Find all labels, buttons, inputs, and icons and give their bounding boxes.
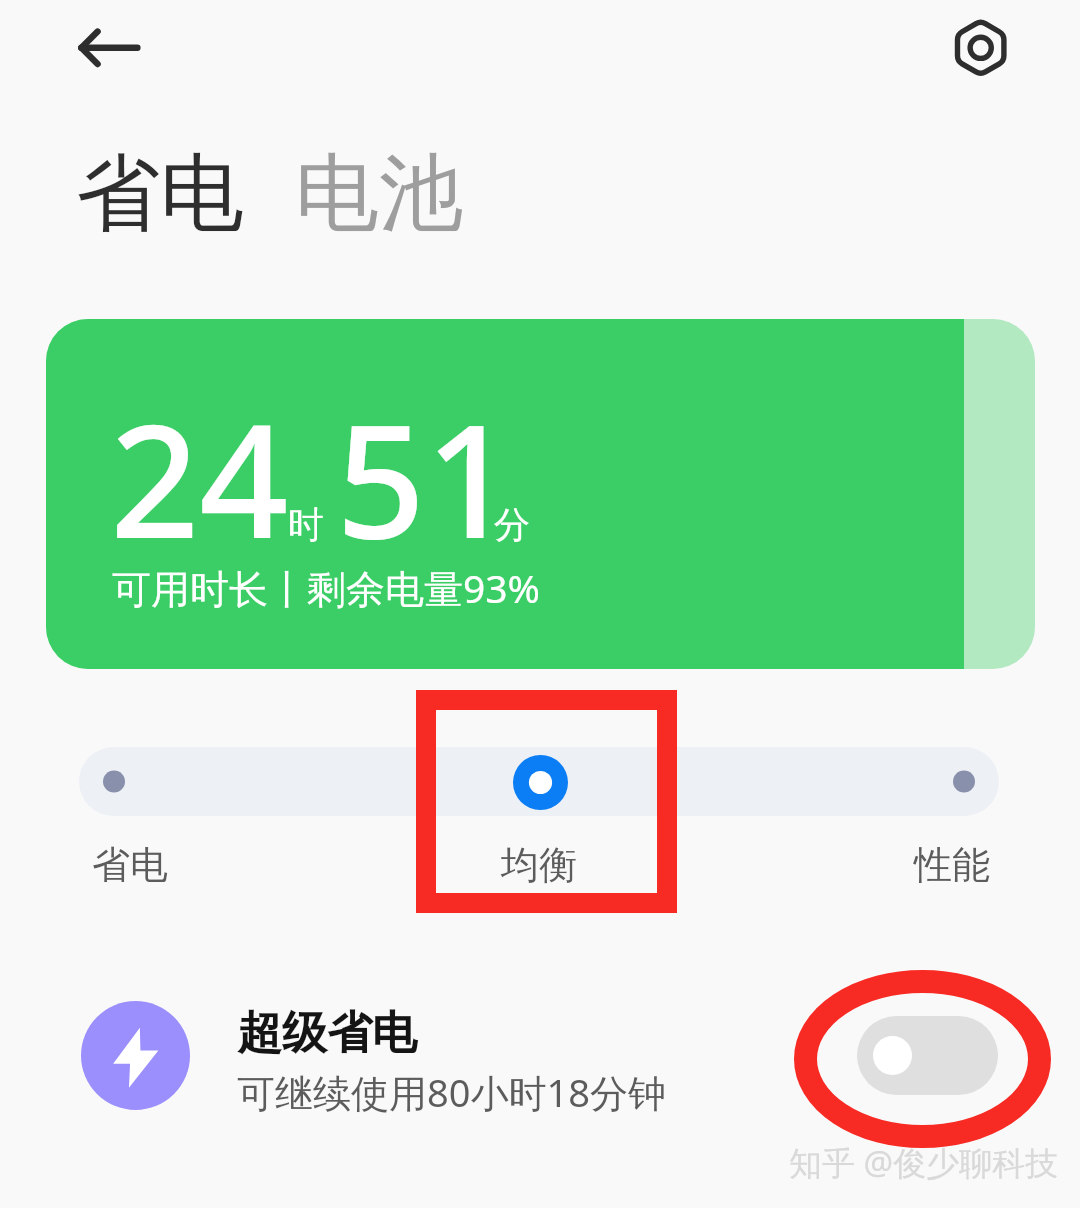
button[interactable]: Settings	[940, 8, 1020, 88]
staticText: 分	[494, 502, 530, 547]
button[interactable]: 超级省电	[0, 975, 1080, 1140]
button[interactable]: 24	[46, 319, 1035, 669]
staticText: 性能	[914, 841, 990, 889]
button[interactable]: 均衡	[385, 835, 692, 895]
staticText: 可继续使用80小时18分钟	[237, 1066, 666, 1118]
button[interactable]: Balanced mode selected	[513, 755, 568, 810]
staticText: 24	[110, 371, 289, 583]
staticText: 可用时长丨剩余电量93%	[112, 561, 541, 614]
staticText: 省电	[76, 141, 244, 247]
staticText: 超级省电	[237, 1005, 417, 1062]
staticText: 省电	[92, 841, 168, 889]
staticText: 电池	[295, 141, 463, 247]
button[interactable]: 省电	[79, 835, 385, 895]
staticText: 时	[288, 502, 324, 547]
button[interactable]: Super battery saver toggle	[857, 1016, 998, 1095]
staticText: 知乎 @俊少聊科技	[789, 1140, 1059, 1185]
staticText: 51	[336, 371, 515, 583]
button[interactable]: Back	[61, 8, 141, 88]
button[interactable]: 性能	[692, 835, 999, 895]
staticText: 均衡	[501, 841, 577, 889]
